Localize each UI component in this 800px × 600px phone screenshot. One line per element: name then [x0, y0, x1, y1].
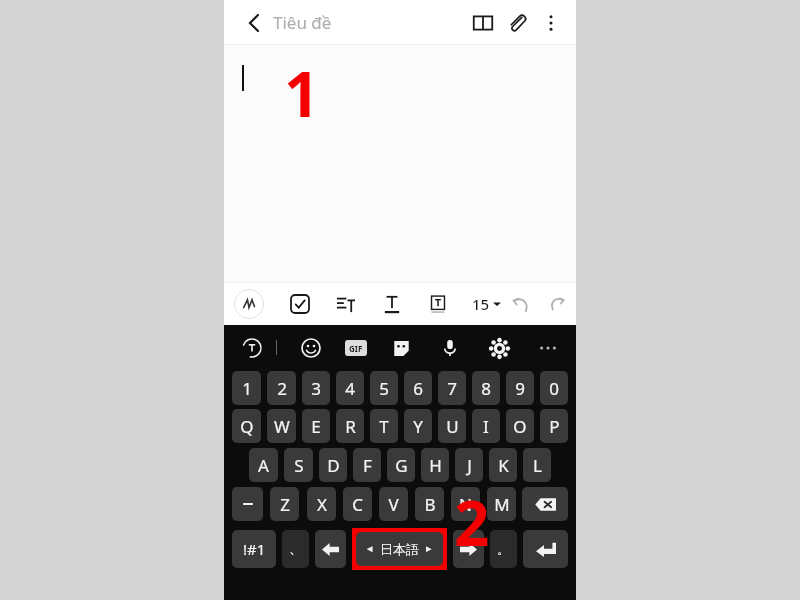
staticText: X [317, 493, 327, 516]
staticText: Y [413, 415, 423, 438]
staticText: 4 [345, 377, 355, 400]
staticText: ▶ [426, 545, 432, 553]
staticText: 2 [277, 377, 287, 400]
button[interactable]: ◀ [356, 532, 443, 566]
button[interactable]: 5 [370, 371, 398, 405]
button[interactable]: K [489, 448, 517, 482]
button[interactable]: W [267, 409, 296, 443]
button[interactable]: !#1 [232, 530, 276, 568]
staticText: J [467, 454, 472, 477]
button[interactable]: Back [238, 7, 270, 39]
button[interactable]: Backspace [522, 487, 568, 521]
button[interactable]: 、 [282, 530, 309, 568]
button[interactable]: 9 [506, 371, 534, 405]
button[interactable]: Settings [485, 334, 513, 362]
button[interactable]: Emoji [297, 334, 325, 362]
staticText: 日本語 [380, 541, 419, 557]
button[interactable]: 3 [302, 371, 330, 405]
staticText: 2 [454, 480, 490, 564]
button[interactable]: 6 [404, 371, 432, 405]
button[interactable]: Enter [523, 530, 568, 568]
button[interactable]: More [534, 334, 562, 362]
button[interactable]: Draw [234, 289, 264, 319]
button[interactable]: 0 [540, 371, 568, 405]
staticText: A [258, 454, 269, 477]
staticText: E [311, 415, 321, 438]
button[interactable]: Attach [500, 6, 534, 40]
button[interactable]: 2 [267, 371, 296, 405]
staticText: B [424, 493, 436, 516]
staticText: N [459, 493, 472, 516]
button[interactable]: Move left [315, 530, 346, 568]
button[interactable]: 4 [336, 371, 364, 405]
button[interactable]: J [455, 448, 483, 482]
staticText: L [533, 454, 542, 477]
staticText: 、 [289, 540, 303, 558]
staticText: 8 [481, 377, 491, 400]
staticText: 9 [515, 377, 525, 400]
staticText: G [395, 454, 408, 477]
button[interactable]: Z [270, 487, 299, 521]
button[interactable]: V [379, 487, 408, 521]
button[interactable]: Checklist [286, 290, 314, 318]
button[interactable]: Text alignment [332, 290, 360, 318]
staticText: Q [240, 415, 254, 438]
staticText: 15 [472, 294, 490, 314]
button[interactable]: Y [404, 409, 432, 443]
button[interactable]: 8 [472, 371, 500, 405]
staticText: D [327, 454, 340, 477]
staticText: 7 [447, 377, 457, 400]
button[interactable]: O [506, 409, 534, 443]
staticText: 3 [311, 377, 321, 400]
button[interactable]: Book [466, 6, 500, 40]
button[interactable]: I [472, 409, 500, 443]
button[interactable]: T [370, 409, 398, 443]
button[interactable]: S [284, 448, 313, 482]
button[interactable]: Shift [232, 487, 263, 521]
button[interactable]: GIF [345, 340, 367, 356]
staticText: R [345, 415, 356, 438]
button[interactable]: 15 [468, 290, 505, 318]
staticText: GIF [349, 343, 363, 354]
button[interactable]: 。 [490, 530, 517, 568]
staticText: 。 [497, 541, 510, 557]
staticText: H [429, 454, 442, 477]
staticText: P [549, 415, 560, 438]
button[interactable]: H [421, 448, 449, 482]
button[interactable]: M [487, 487, 516, 521]
button[interactable]: Text box [424, 290, 452, 318]
button[interactable]: G [387, 448, 415, 482]
button[interactable]: C [343, 487, 372, 521]
button[interactable]: P [540, 409, 568, 443]
button[interactable]: R [336, 409, 364, 443]
button[interactable]: X [307, 487, 336, 521]
button[interactable]: More options [534, 6, 568, 40]
staticText: Z [280, 493, 290, 516]
button[interactable]: N [451, 487, 480, 521]
button[interactable]: Translate [238, 334, 266, 362]
button[interactable]: Stickers [387, 334, 415, 362]
staticText: V [388, 493, 399, 516]
button[interactable]: B [415, 487, 444, 521]
button[interactable]: A [249, 448, 278, 482]
staticText: 1 [284, 51, 320, 135]
staticText: S [294, 454, 304, 477]
button[interactable]: L [523, 448, 551, 482]
button[interactable]: 1 [232, 371, 261, 405]
button[interactable]: F [353, 448, 381, 482]
button[interactable]: Text style [378, 290, 406, 318]
button[interactable]: U [438, 409, 466, 443]
staticText: Tiêu đề [273, 11, 332, 34]
button[interactable]: Q [232, 409, 261, 443]
button[interactable]: Redo [549, 289, 566, 319]
staticText: U [446, 415, 459, 438]
button[interactable]: Voice input [436, 334, 464, 362]
staticText: !#1 [243, 539, 266, 559]
button[interactable]: 7 [438, 371, 466, 405]
staticText: I [483, 415, 489, 438]
button[interactable]: D [319, 448, 347, 482]
button[interactable]: Undo [505, 289, 535, 319]
button[interactable]: Move right [453, 530, 484, 568]
button[interactable]: E [302, 409, 330, 443]
staticText: 0 [549, 377, 559, 400]
